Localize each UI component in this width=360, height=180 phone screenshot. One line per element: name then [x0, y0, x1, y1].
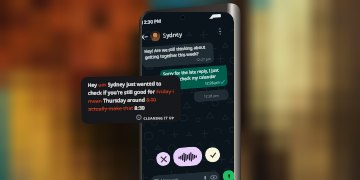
staticText: Sorry for the late reply, I just need to… [163, 67, 225, 84]
staticText: Hey! Are we still thinking about getting… [144, 44, 211, 61]
button[interactable]: Message [153, 171, 217, 180]
button[interactable]: Record voice message [222, 170, 234, 180]
staticText: Message [161, 177, 179, 180]
button[interactable]: More options [216, 27, 224, 36]
button[interactable]: Back [142, 32, 150, 42]
button[interactable]: Hey um Sydney just wanted to check if yo… [88, 80, 175, 121]
staticText: 12:28 pm [204, 93, 219, 99]
staticText: 12:28 pm [205, 80, 220, 86]
staticText: Sydney [163, 30, 182, 40]
staticText: 12:30 PM [142, 18, 161, 25]
staticText: Hey um Sydney just wanted to check if yo… [88, 80, 175, 112]
staticText: 12:27 pm [196, 56, 211, 62]
button[interactable]: Discard [156, 151, 171, 166]
staticText: CLEANING IT UP [143, 115, 174, 120]
button[interactable]: Accept [205, 147, 221, 163]
button[interactable]: Play voice message [172, 146, 203, 167]
